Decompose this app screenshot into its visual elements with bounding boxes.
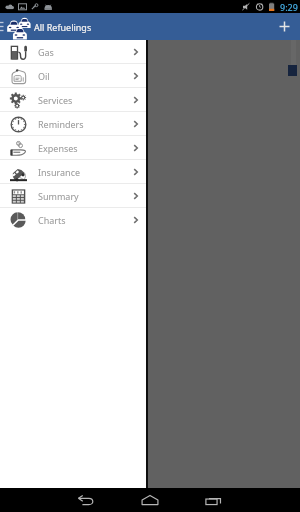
staticText: Insurance: [38, 166, 81, 178]
staticText: Oil: [38, 70, 50, 82]
staticText: 9:29: [280, 1, 298, 13]
button[interactable]: Home: [126, 488, 174, 512]
button[interactable]: Recent apps: [190, 488, 238, 512]
button[interactable]: Reminders: [0, 112, 146, 136]
button[interactable]: Expenses: [0, 136, 146, 160]
button[interactable]: Add: [271, 13, 298, 40]
button[interactable]: Services: [0, 88, 146, 112]
staticText: Summary: [38, 190, 79, 202]
staticText: Services: [38, 94, 73, 106]
staticText: All Refuelings: [34, 21, 92, 33]
button[interactable]: Summary: [0, 184, 146, 208]
button[interactable]: Back: [62, 488, 110, 512]
button[interactable]: Oil: [0, 64, 146, 88]
button[interactable]: Charts: [0, 208, 146, 232]
staticText: Charts: [38, 214, 66, 226]
button[interactable]: Open navigation drawer: [0, 13, 6, 40]
staticText: Gas: [38, 46, 54, 58]
button[interactable]: Insurance: [0, 160, 146, 184]
button[interactable]: Gas: [0, 40, 146, 64]
staticText: Expenses: [38, 142, 78, 154]
staticText: Reminders: [38, 118, 84, 130]
